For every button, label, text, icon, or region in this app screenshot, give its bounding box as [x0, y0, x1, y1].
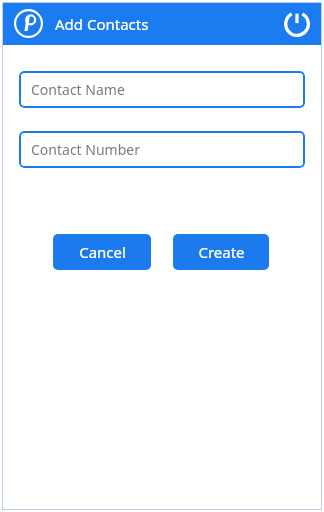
staticText: Add Contacts [55, 14, 149, 34]
staticText: Create [198, 242, 245, 262]
staticText: Cancel [79, 242, 126, 262]
staticText: Contact Name [31, 80, 125, 99]
button[interactable]: Cancel [53, 234, 151, 270]
button[interactable]: App logo [13, 8, 44, 39]
button[interactable]: Contact Name [19, 71, 305, 108]
button[interactable]: Contact Number [19, 131, 305, 168]
button[interactable]: Create [173, 234, 269, 270]
button[interactable]: Power / Logout [278, 5, 316, 43]
staticText: Contact Number [31, 140, 140, 159]
